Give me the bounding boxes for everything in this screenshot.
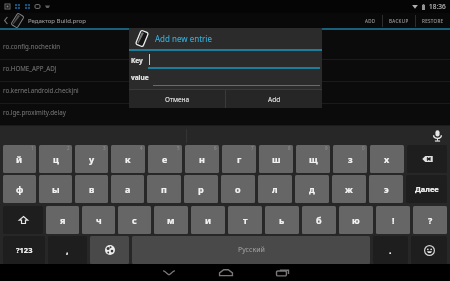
staticText: ADD	[365, 18, 376, 24]
staticText: Key	[131, 56, 143, 65]
staticText: ф	[16, 183, 24, 195]
button[interactable]: ADD	[359, 13, 382, 28]
button[interactable]: Hide keyboard	[152, 264, 185, 281]
staticText: а	[125, 183, 131, 195]
staticText: Отмена	[165, 95, 190, 104]
button[interactable]: ro.kernel.android.checkjni	[0, 82, 450, 104]
button[interactable]: о	[221, 175, 255, 203]
button[interactable]: щ	[296, 145, 330, 173]
staticText: н	[199, 153, 205, 165]
staticText: э	[384, 183, 389, 195]
button[interactable]: .	[373, 236, 408, 264]
staticText: я	[60, 214, 66, 226]
button[interactable]: !	[376, 206, 410, 234]
staticText: щ	[309, 153, 318, 165]
button[interactable]: ь	[265, 206, 299, 234]
staticText: ж	[345, 183, 353, 195]
button[interactable]: ф	[3, 175, 36, 203]
staticText: т	[243, 214, 248, 226]
button[interactable]: д	[295, 175, 329, 203]
staticText: з	[348, 153, 353, 165]
button[interactable]: ы	[39, 175, 72, 203]
staticText: ь	[279, 214, 285, 226]
staticText: 9	[325, 145, 328, 151]
staticText: 0	[362, 145, 365, 151]
button[interactable]: н	[185, 145, 219, 173]
button[interactable]: к	[111, 145, 145, 173]
button[interactable]: и	[191, 206, 225, 234]
button[interactable]: Home	[209, 264, 242, 281]
staticText: 18:36	[429, 2, 446, 11]
button[interactable]: ?123	[3, 236, 45, 264]
button[interactable]: ?	[413, 206, 447, 234]
staticText: м	[167, 214, 175, 226]
button[interactable]: т	[228, 206, 262, 234]
button[interactable]: а	[111, 175, 144, 203]
staticText: Редактор Build.prop	[28, 17, 86, 25]
button[interactable]: Voice input	[431, 129, 444, 142]
button[interactable]: е	[148, 145, 182, 173]
staticText: 2	[67, 145, 70, 151]
staticText: Русский	[238, 245, 265, 255]
staticText: и	[205, 214, 212, 226]
button[interactable]: ш	[259, 145, 293, 173]
button[interactable]: й	[3, 145, 36, 173]
button[interactable]: х	[370, 145, 404, 173]
button[interactable]: л	[258, 175, 292, 203]
button[interactable]: з	[333, 145, 367, 173]
staticText: к	[125, 153, 131, 165]
button[interactable]: Отмена	[129, 90, 225, 108]
button[interactable]: Change language	[90, 236, 129, 264]
staticText: ?123	[16, 245, 33, 255]
button[interactable]: с	[118, 206, 151, 234]
button[interactable]: Navigate up	[1, 13, 11, 28]
button[interactable]: г	[222, 145, 256, 173]
button[interactable]: Shift	[3, 206, 43, 234]
staticText: ш	[272, 153, 281, 165]
staticText: .	[389, 244, 392, 256]
button[interactable]: ч	[82, 206, 115, 234]
button[interactable]: BACKUP	[383, 13, 415, 28]
button[interactable]: у	[75, 145, 108, 173]
button[interactable]: ro.HOME_APP_ADJ	[0, 60, 450, 82]
staticText: ы	[52, 183, 60, 195]
button[interactable]: RESTORE	[416, 13, 450, 28]
staticText: г	[237, 153, 242, 165]
staticText: в	[89, 183, 95, 195]
button[interactable]: м	[154, 206, 188, 234]
staticText: п	[161, 183, 167, 195]
button[interactable]: ro.lge.proximity.delay	[0, 104, 450, 126]
staticText: Далее	[415, 184, 439, 194]
staticText: й	[16, 153, 23, 165]
button[interactable]: Add	[226, 90, 322, 108]
staticText: 3	[103, 145, 106, 151]
button[interactable]: б	[302, 206, 336, 234]
button[interactable]: в	[75, 175, 108, 203]
staticText: ,	[66, 244, 69, 256]
staticText: х	[384, 153, 390, 165]
button[interactable]: ю	[339, 206, 373, 234]
button[interactable]: Space	[132, 236, 370, 264]
staticText: 5	[177, 145, 180, 151]
button[interactable]: ц	[39, 145, 72, 173]
staticText: ч	[96, 214, 102, 226]
staticText: 7	[251, 145, 254, 151]
staticText: д	[309, 183, 315, 195]
button[interactable]: Recent apps	[266, 264, 299, 281]
staticText: 8	[288, 145, 291, 151]
button[interactable]: п	[147, 175, 181, 203]
staticText: о	[235, 183, 241, 195]
staticText: BACKUP	[389, 18, 409, 24]
button[interactable]: Backspace	[407, 145, 447, 173]
button[interactable]: Emoji	[411, 236, 447, 264]
button[interactable]: я	[46, 206, 79, 234]
button[interactable]: ж	[332, 175, 366, 203]
button[interactable]: э	[369, 175, 403, 203]
staticText: 6	[214, 145, 217, 151]
button[interactable]: Далее	[406, 175, 447, 203]
button[interactable]: р	[184, 175, 218, 203]
staticText: ц	[53, 153, 59, 165]
button[interactable]: ro.config.nocheckin	[0, 38, 450, 60]
staticText: 1	[31, 145, 34, 151]
button[interactable]: ,	[48, 236, 87, 264]
